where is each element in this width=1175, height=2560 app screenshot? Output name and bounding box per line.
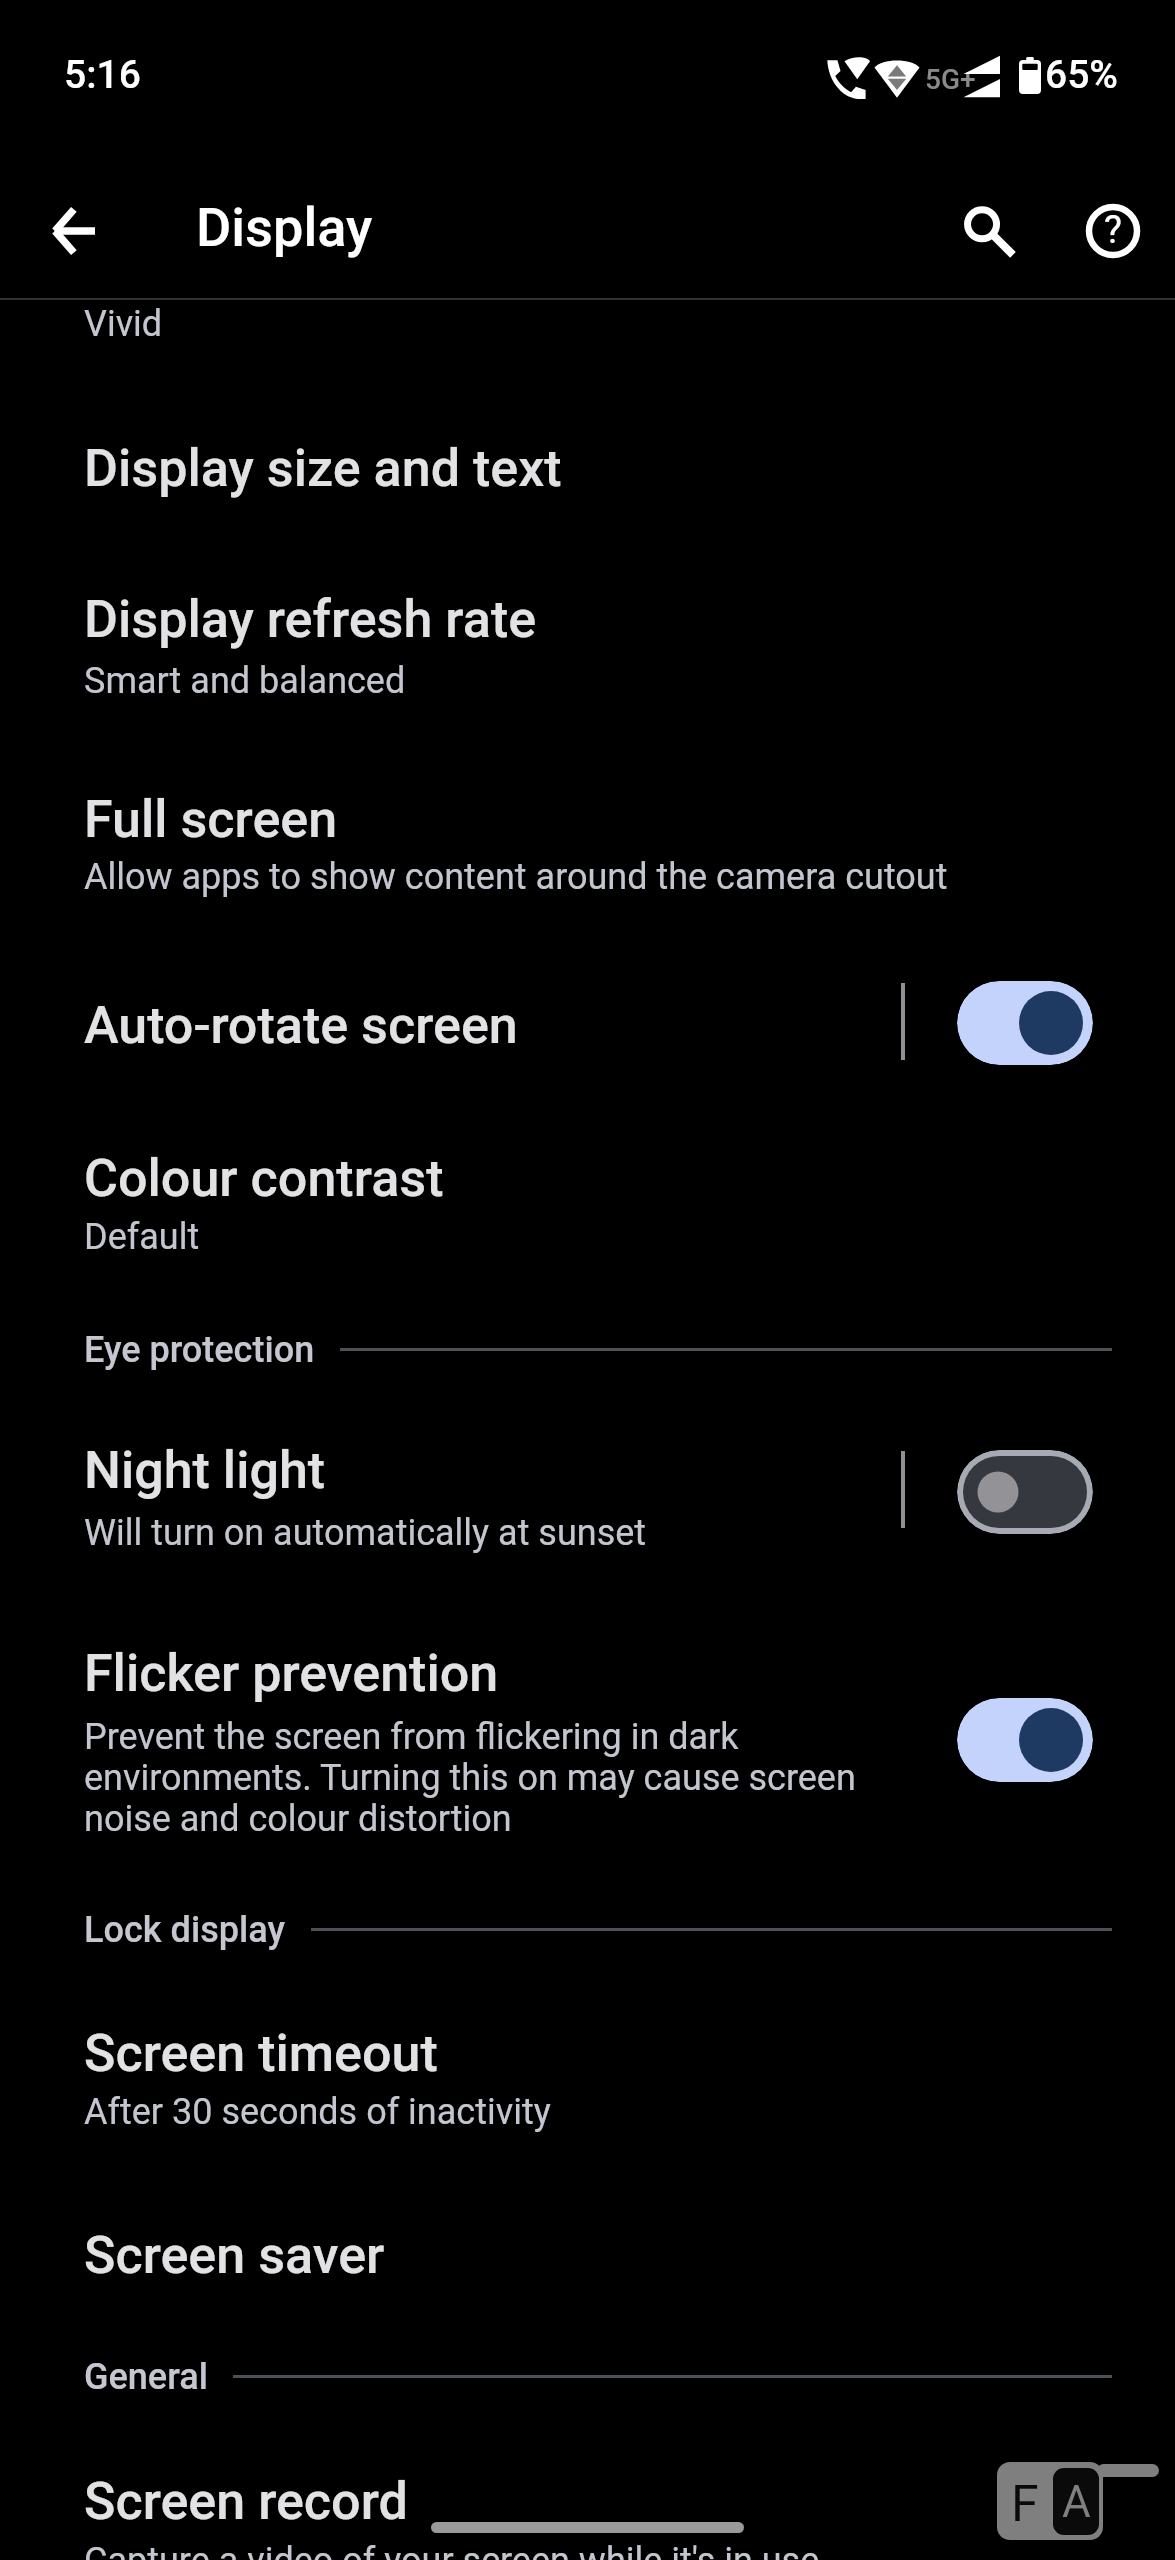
button[interactable]: Colour contrast <box>0 1103 1175 1295</box>
staticText: Night light <box>84 1440 326 1501</box>
staticText: Colour contrast <box>84 1148 444 1209</box>
staticText: Smart and balanced <box>84 661 406 702</box>
button[interactable]: Screen saver <box>0 2182 1175 2322</box>
button[interactable]: Screen record <box>0 2430 1175 2560</box>
staticText: Eye protection <box>84 1329 315 1371</box>
staticText: A <box>1062 2476 1091 2528</box>
staticText: Capture a video of your screen while it'… <box>84 2541 820 2560</box>
staticText: Lock display <box>84 1909 285 1951</box>
button[interactable]: Full screen <box>0 733 1175 933</box>
staticText: After 30 seconds of inactivity <box>84 2092 551 2133</box>
staticText: 65% <box>1045 52 1118 98</box>
button[interactable]: Search <box>941 183 1037 279</box>
button[interactable]: Display refresh rate <box>0 533 1175 733</box>
button[interactable]: Screen timeout <box>0 1982 1175 2172</box>
staticText: Display <box>196 196 373 259</box>
staticText: Vivid <box>84 304 163 345</box>
staticText: Screen saver <box>84 2225 385 2286</box>
button[interactable]: Auto-rotate screen <box>957 981 1093 1065</box>
button[interactable]: Accessibility font size <box>997 2462 1103 2540</box>
staticText: Will turn on automatically at sunset <box>84 1513 647 1554</box>
staticText: General <box>84 2356 209 2398</box>
staticText: Prevent the screen from flickering in da… <box>84 1717 874 1840</box>
button[interactable]: Flicker prevention <box>957 1698 1093 1782</box>
button[interactable]: Help <box>1065 183 1161 279</box>
staticText: Auto-rotate screen <box>84 995 518 1056</box>
staticText: Screen record <box>84 2471 408 2532</box>
staticText: F <box>1011 2475 1039 2534</box>
staticText: Screen timeout <box>84 2023 438 2084</box>
button[interactable]: Night light <box>0 1400 1175 1590</box>
button[interactable]: Night light <box>957 1450 1093 1534</box>
staticText: Flicker prevention <box>84 1643 499 1704</box>
staticText: ? <box>1104 208 1122 253</box>
staticText: 5G+ <box>925 63 976 96</box>
button[interactable]: Display size and text <box>0 397 1175 533</box>
staticText: 5:16 <box>64 52 141 98</box>
staticText: Display size and text <box>84 438 562 499</box>
button[interactable]: Auto-rotate screen <box>0 955 1175 1093</box>
staticText: Default <box>84 1217 200 1258</box>
button[interactable]: Vivid <box>0 301 1175 397</box>
staticText: Display refresh rate <box>84 589 537 650</box>
staticText: Allow apps to show content around the ca… <box>84 857 948 898</box>
staticText: Full screen <box>84 789 338 850</box>
button[interactable]: Flicker prevention <box>0 1600 1175 1865</box>
button[interactable]: Navigate up <box>25 183 121 279</box>
